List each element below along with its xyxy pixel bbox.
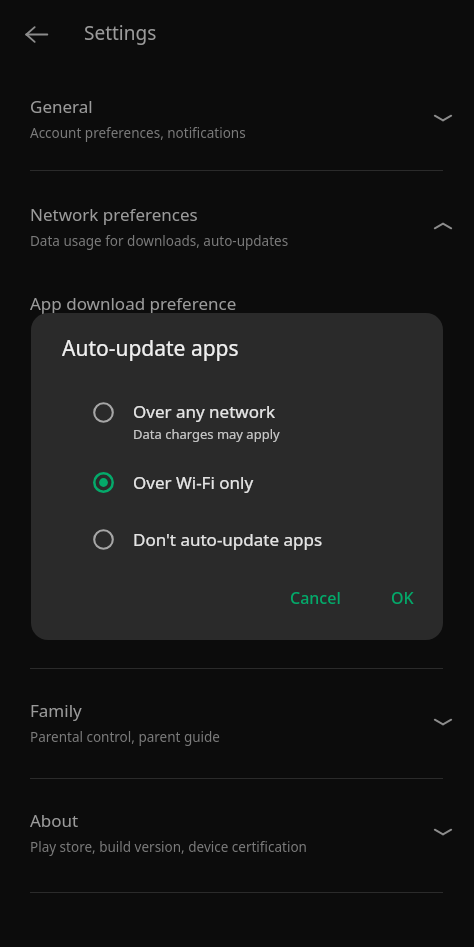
staticText: Data usage for downloads, auto-updates [30,232,289,250]
staticText: General [30,95,93,118]
button[interactable]: Don't auto-update apps [31,515,443,563]
staticText: Cancel [290,587,341,609]
staticText: Settings [84,20,157,46]
staticText: About [30,809,79,832]
button[interactable]: Over any network [31,390,443,452]
button[interactable]: Over Wi-Fi only [31,458,443,506]
staticText: Auto-update apps [62,334,239,363]
staticText: Data charges may apply [133,425,280,443]
button[interactable]: Cancel [279,578,352,618]
staticText: App download preference [30,292,237,315]
button[interactable]: Network preferences [0,190,474,262]
staticText: Network preferences [30,203,198,226]
staticText: Over Wi-Fi only [133,471,254,494]
staticText: Play store, build version, device certif… [30,838,307,856]
button[interactable]: Family [0,686,474,758]
staticText: Account preferences, notifications [30,124,246,142]
button[interactable]: Back [14,12,58,56]
staticText: Over any network [133,400,276,423]
staticText: Family [30,699,82,722]
staticText: Don't auto-update apps [133,528,323,551]
button[interactable]: OK [380,578,425,618]
staticText: OK [391,587,414,609]
button[interactable]: General [0,82,474,154]
staticText: Parental control, parent guide [30,728,220,746]
button[interactable]: About [0,796,474,868]
